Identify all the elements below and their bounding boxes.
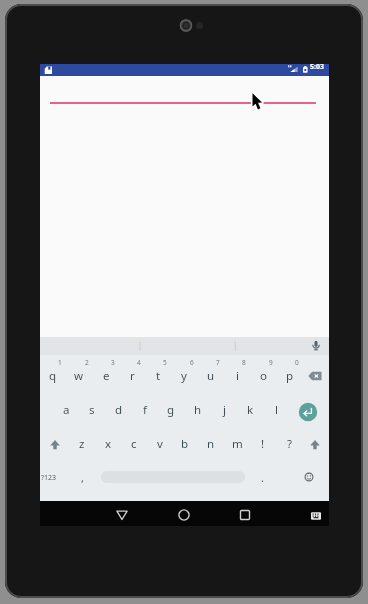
button[interactable]: q [38,367,68,385]
staticText: p [286,368,294,384]
staticText: i [236,368,239,384]
staticText: f [143,402,147,418]
button[interactable] [232,502,258,527]
staticText: 0 [295,358,299,367]
staticText: . [261,470,264,485]
button[interactable]: b [170,435,200,453]
button[interactable]: i [222,367,252,385]
button[interactable]: ! [248,435,278,453]
staticText: x [105,436,112,452]
staticText: 4 [137,358,141,367]
staticText: 9 [269,358,273,367]
button[interactable]: f [130,401,160,419]
button[interactable]: k [235,401,265,419]
button[interactable]: r [117,367,147,385]
staticText: ?123 [41,473,57,483]
staticText: 5 [163,358,167,367]
staticText: 2 [85,358,89,367]
button[interactable] [298,466,320,488]
staticText: v [157,436,163,452]
staticText: c [131,436,137,452]
button[interactable]: x [93,435,123,453]
staticText: m [232,436,243,452]
button[interactable]: h [183,401,213,419]
staticText: z [79,436,85,452]
staticText: k [247,402,254,418]
staticText: e [103,368,110,384]
button[interactable]: . [247,468,277,486]
staticText: q [49,368,57,384]
button[interactable]: t [143,367,173,385]
staticText: y [181,368,187,384]
staticText: s [89,402,95,418]
staticText: l [275,402,278,418]
button[interactable]: c [119,435,149,453]
staticText: u [207,368,215,384]
staticText: 6 [190,358,194,367]
staticText: h [194,402,202,418]
button[interactable]: m [222,435,252,453]
button[interactable]: z [67,435,97,453]
staticText: r [130,368,135,384]
button[interactable] [109,502,135,527]
staticText: a [63,402,70,418]
staticText: ! [261,436,265,452]
button[interactable]: p [275,367,305,385]
staticText: d [115,402,123,418]
button[interactable]: ? [274,435,304,453]
button[interactable]: n [196,435,226,453]
staticText: w [74,368,84,384]
staticText: ? [287,436,292,452]
staticText: t [156,368,161,384]
staticText: g [167,402,175,418]
staticText: 3 [111,358,115,367]
staticText: 8 [242,358,246,367]
button[interactable]: ?123 [36,471,62,485]
button[interactable]: j [209,401,239,419]
staticText: n [207,436,215,452]
button[interactable]: s [77,401,107,419]
button[interactable]: v [145,435,175,453]
button[interactable]: d [104,401,134,419]
staticText: 1 [58,358,62,367]
button[interactable] [41,431,69,459]
button[interactable]: a [51,401,81,419]
staticText: 5:03 [310,62,324,72]
button[interactable]: , [67,468,97,486]
button[interactable] [306,337,326,355]
button[interactable]: y [169,367,199,385]
button[interactable]: e [91,367,121,385]
button[interactable] [171,502,197,527]
button[interactable] [304,504,328,528]
button[interactable]: u [196,367,226,385]
staticText: 7 [216,358,220,367]
button[interactable] [301,362,329,390]
button[interactable] [301,431,329,459]
button[interactable]: l [261,401,291,419]
button[interactable]: o [248,367,278,385]
staticText: j [223,402,226,418]
button[interactable] [294,398,322,426]
staticText: b [181,436,189,452]
staticText: o [260,368,267,384]
staticText: , [81,470,84,485]
button[interactable]: w [64,367,94,385]
button[interactable] [50,102,316,104]
button[interactable]: g [156,401,186,419]
